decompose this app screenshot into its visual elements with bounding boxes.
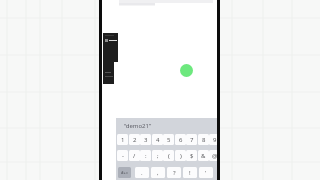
staticText: 6 bbox=[179, 136, 183, 144]
staticText: - bbox=[122, 152, 124, 160]
button[interactable]: & bbox=[198, 150, 209, 161]
staticText: #+= bbox=[121, 170, 129, 175]
staticText: 1 bbox=[121, 136, 125, 144]
button[interactable]: 5 bbox=[163, 134, 174, 145]
staticText: 2 bbox=[133, 136, 137, 144]
button[interactable]: 7 bbox=[186, 134, 197, 145]
staticText: ' bbox=[205, 169, 207, 177]
button[interactable]: ' bbox=[199, 167, 213, 178]
button[interactable]: , bbox=[151, 167, 165, 178]
button[interactable]: : bbox=[140, 150, 151, 161]
staticText: , bbox=[157, 169, 159, 177]
button[interactable]: ! bbox=[183, 167, 197, 178]
button[interactable]: 4 bbox=[152, 134, 163, 145]
button[interactable]: ( bbox=[163, 150, 174, 161]
staticText: 5 bbox=[167, 136, 171, 144]
button[interactable]: ? bbox=[167, 167, 181, 178]
button[interactable]: “demo21” bbox=[124, 122, 152, 130]
button[interactable]: Status indicator bbox=[180, 64, 193, 77]
staticText: @ bbox=[212, 152, 217, 160]
staticText: 4 bbox=[156, 136, 160, 144]
staticText: $ bbox=[190, 152, 194, 160]
staticText: ) bbox=[180, 152, 182, 160]
button[interactable]: #+= bbox=[118, 167, 131, 178]
button[interactable] bbox=[103, 62, 114, 84]
button[interactable]: $ bbox=[186, 150, 197, 161]
staticText: & bbox=[201, 152, 206, 160]
staticText: ! bbox=[189, 169, 191, 177]
staticText: 3 bbox=[144, 136, 148, 144]
button[interactable]: 9 bbox=[209, 134, 217, 145]
button[interactable]: 3 bbox=[140, 134, 151, 145]
staticText: : bbox=[145, 152, 147, 160]
button[interactable]: . bbox=[135, 167, 149, 178]
staticText: ( bbox=[168, 152, 170, 160]
button[interactable]: ; bbox=[152, 150, 163, 161]
button[interactable]: 6 bbox=[175, 134, 186, 145]
button[interactable]: - bbox=[117, 150, 128, 161]
button[interactable]: 1 bbox=[117, 134, 128, 145]
staticText: 9 bbox=[213, 136, 217, 144]
button[interactable]: Notification panel bbox=[103, 33, 118, 62]
staticText: . bbox=[141, 169, 143, 177]
staticText: 7 bbox=[190, 136, 194, 144]
button[interactable]: / bbox=[129, 150, 140, 161]
staticText: 8 bbox=[202, 136, 206, 144]
button[interactable]: ) bbox=[175, 150, 186, 161]
staticText: ? bbox=[173, 169, 176, 177]
button[interactable]: @ bbox=[209, 150, 217, 161]
staticText: / bbox=[133, 152, 136, 160]
staticText: ; bbox=[157, 152, 159, 160]
button[interactable]: 2 bbox=[129, 134, 140, 145]
button[interactable]: 8 bbox=[198, 134, 209, 145]
